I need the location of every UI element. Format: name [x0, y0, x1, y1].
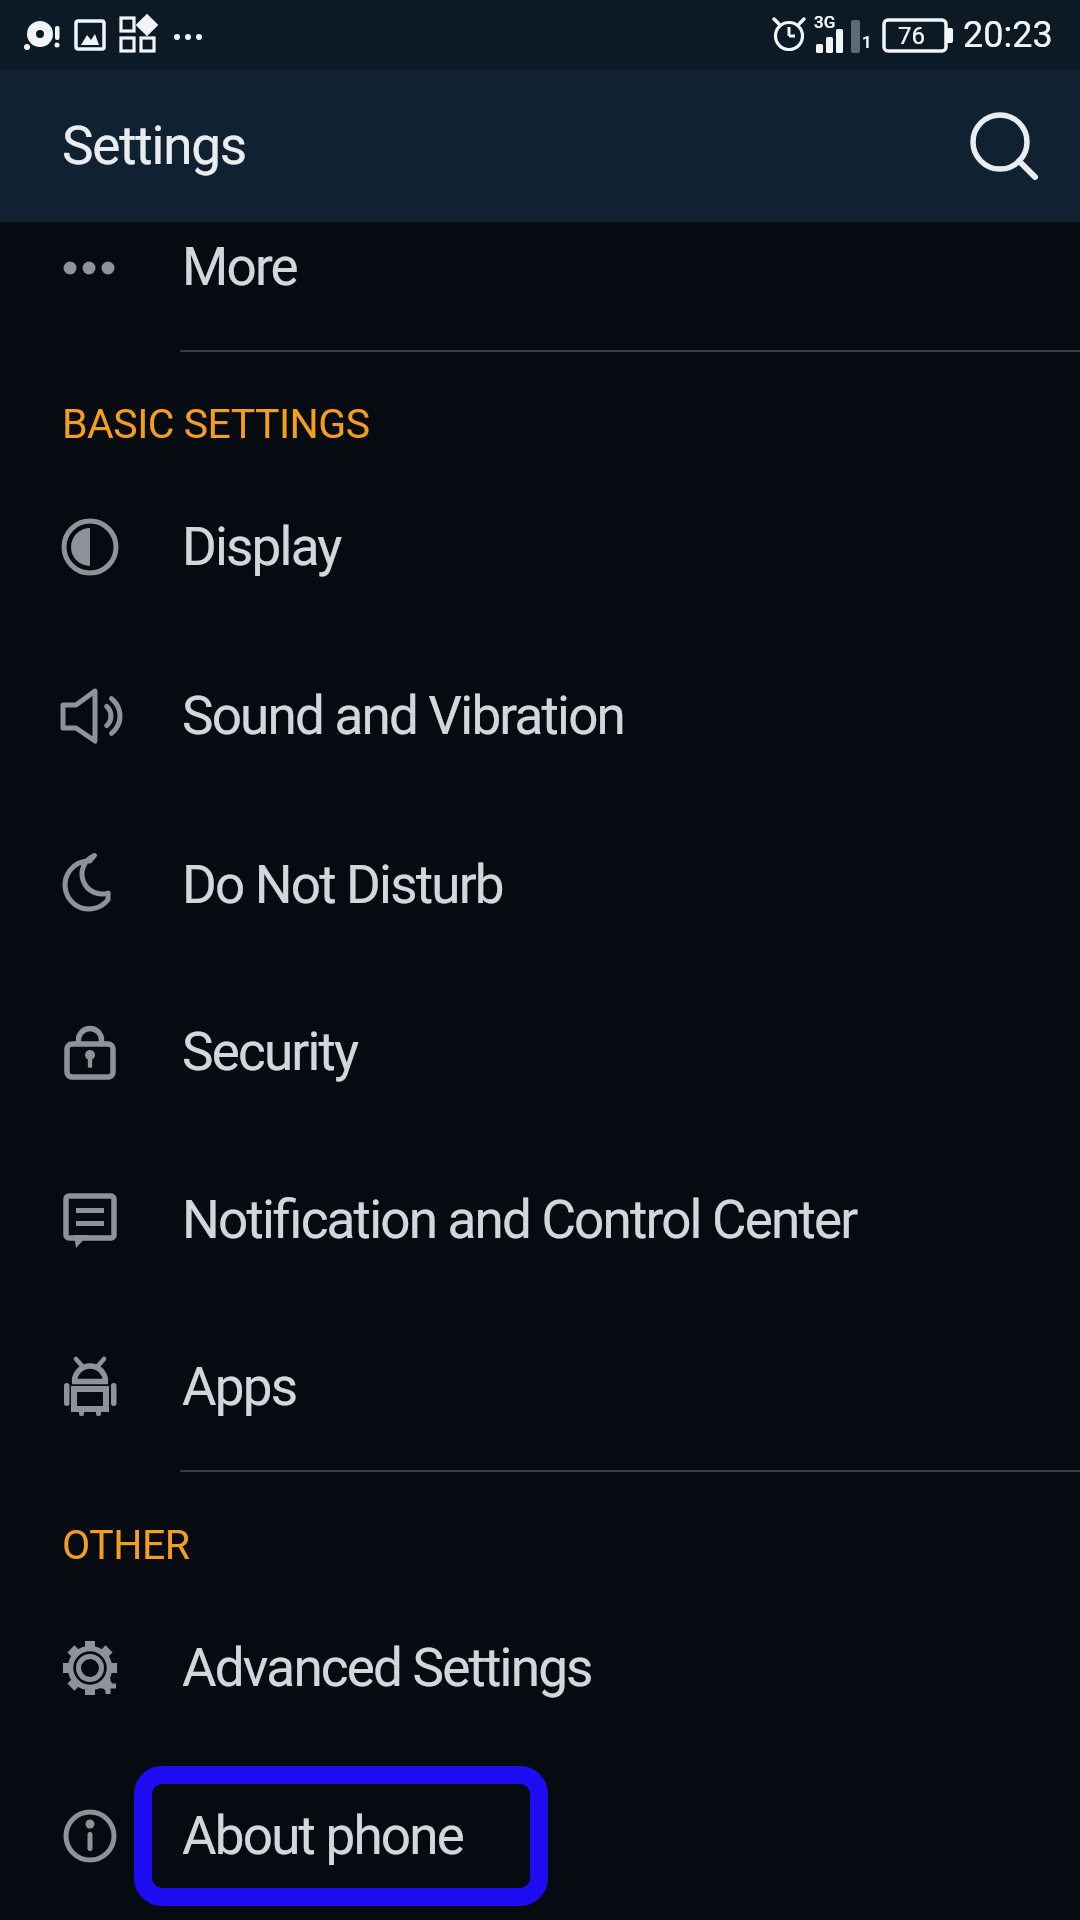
staticText: Do Not Disturb [182, 854, 503, 916]
button[interactable]: Do Not Disturb [0, 801, 1080, 969]
staticText: Display [182, 516, 341, 578]
staticText: 76 [898, 22, 925, 50]
button[interactable]: Apps [0, 1303, 1080, 1471]
button[interactable]: Sound and Vibration [0, 632, 1080, 800]
button[interactable]: About phone [0, 1752, 1080, 1920]
button[interactable]: Display [0, 463, 1080, 631]
button[interactable]: More [0, 183, 1080, 351]
staticText: 20:23 [963, 14, 1053, 56]
staticText: 3G [814, 12, 836, 32]
staticText: Apps [182, 1356, 297, 1418]
staticText: 1 [862, 32, 872, 52]
staticText: BASIC SETTINGS [62, 400, 370, 448]
staticText: Sound and Vibration [182, 685, 625, 747]
staticText: Notification and Control Center [182, 1189, 857, 1251]
button[interactable]: Advanced Settings [0, 1584, 1080, 1752]
staticText: Settings [62, 115, 246, 177]
staticText: More [182, 236, 297, 298]
staticText: OTHER [62, 1521, 190, 1569]
staticText: Advanced Settings [182, 1637, 592, 1699]
staticText: About phone [182, 1805, 464, 1867]
button[interactable]: Notification and Control Center [0, 1136, 1080, 1304]
staticText: Security [182, 1021, 358, 1083]
button[interactable]: Security [0, 968, 1080, 1136]
button[interactable] [945, 90, 1057, 202]
